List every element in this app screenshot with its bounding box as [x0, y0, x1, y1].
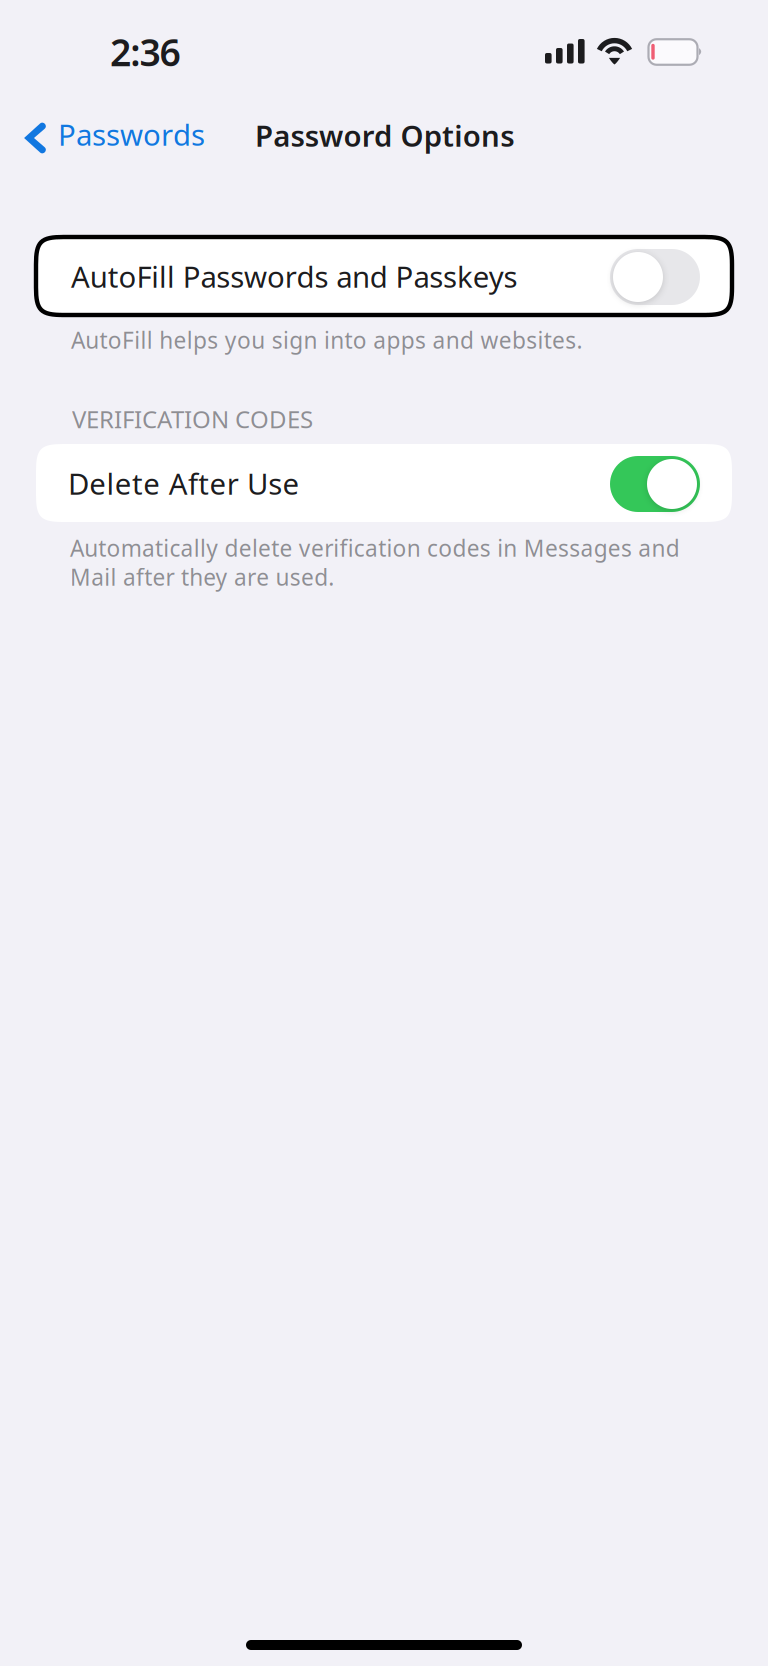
- button[interactable]: AutoFill Passwords and Passkeys: [36, 237, 732, 315]
- staticText: AutoFill helps you sign into apps and we…: [71, 325, 582, 355]
- button[interactable]: Passwords: [0, 110, 226, 172]
- staticText: AutoFill Passwords and Passkeys: [71, 257, 517, 296]
- button[interactable]: Delete After Use: [36, 444, 732, 522]
- staticText: Delete After Use: [68, 464, 300, 503]
- staticText: VERIFICATION CODES: [72, 403, 313, 435]
- button[interactable]: On: [610, 456, 700, 512]
- staticText: Passwords: [58, 115, 205, 154]
- button[interactable]: Off: [610, 249, 700, 305]
- staticText: Automatically delete verification codes …: [70, 533, 680, 563]
- staticText: 2:36: [110, 27, 181, 77]
- staticText: Password Options: [255, 116, 514, 155]
- staticText: Mail after they are used.: [70, 562, 334, 592]
